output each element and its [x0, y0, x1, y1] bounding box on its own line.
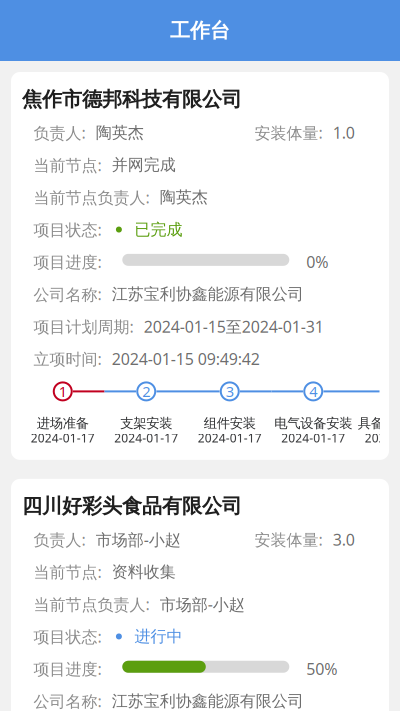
staticText: 3: [226, 382, 234, 401]
staticText: 公司名称:: [33, 283, 101, 305]
staticText: 当前节点负责人:: [33, 187, 149, 208]
staticText: 2024-01-15 09:49:42: [112, 348, 260, 369]
staticText: 1: [59, 382, 67, 401]
button[interactable]: 焦作市德邦科技有限公司: [11, 72, 389, 460]
staticText: 0%: [306, 251, 328, 272]
staticText: 进行中: [134, 627, 182, 646]
staticText: 当前节点负责人:: [33, 593, 149, 615]
staticText: 当前节点:: [33, 561, 101, 582]
staticText: 2024-01-17: [198, 430, 262, 446]
staticText: 项目状态:: [33, 219, 101, 240]
staticText: 2024-01-17: [365, 430, 400, 446]
staticText: 四川好彩头食品有限公司: [22, 494, 242, 518]
staticText: 2024-01-17: [281, 430, 345, 446]
staticText: 项目进度:: [33, 251, 101, 272]
staticText: 陶英杰: [160, 187, 208, 207]
button[interactable]: 四川好彩头食品有限公司: [11, 479, 389, 711]
staticText: 2: [142, 382, 150, 401]
staticText: 江苏宝利协鑫能源有限公司: [112, 284, 304, 304]
staticText: 工作台: [170, 18, 230, 43]
staticText: 当前节点:: [33, 154, 101, 175]
staticText: 江苏宝利协鑫能源有限公司: [112, 691, 304, 711]
staticText: 负责人:: [33, 122, 85, 143]
staticText: 安装体量:: [254, 122, 322, 143]
staticText: 2024-01-17: [114, 430, 178, 446]
staticText: 支架安装: [120, 415, 172, 432]
staticText: 市场部-小赵: [96, 529, 181, 550]
staticText: 安装体量:: [254, 529, 322, 550]
staticText: 项目进度:: [33, 658, 101, 679]
staticText: 具备并网条件: [358, 415, 400, 432]
staticText: 项目计划周期:: [33, 316, 133, 337]
staticText: 2024-01-15至2024-01-31: [144, 316, 324, 337]
staticText: 并网完成: [112, 155, 176, 175]
staticText: 50%: [306, 658, 337, 679]
staticText: 2024-01-17: [31, 430, 95, 446]
staticText: 进场准备: [37, 415, 89, 432]
staticText: 焦作市德邦科技有限公司: [22, 87, 242, 112]
staticText: 电气设备安装: [274, 415, 352, 432]
staticText: 资料收集: [112, 562, 176, 582]
staticText: 1.0: [333, 122, 355, 143]
staticText: 陶英杰: [96, 123, 144, 142]
staticText: 公司名称:: [33, 690, 101, 711]
staticText: 已完成: [134, 220, 182, 239]
staticText: 负责人:: [33, 529, 85, 550]
staticText: 项目状态:: [33, 626, 101, 647]
staticText: 4: [309, 382, 317, 401]
staticText: 市场部-小赵: [160, 593, 245, 615]
staticText: 立项时间:: [33, 348, 101, 369]
staticText: 组件安装: [204, 415, 256, 432]
staticText: 3.0: [333, 529, 355, 550]
